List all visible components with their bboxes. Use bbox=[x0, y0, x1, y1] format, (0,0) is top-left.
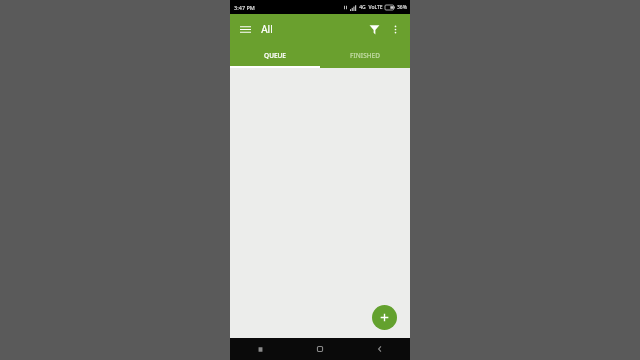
button[interactable]: Open navigation drawer bbox=[236, 20, 254, 38]
button[interactable]: Recent apps bbox=[230, 338, 290, 360]
button[interactable]: Add bbox=[372, 305, 397, 330]
button[interactable]: Filter bbox=[364, 19, 384, 39]
staticText: All bbox=[261, 22, 273, 36]
staticText: VoLTE bbox=[368, 4, 383, 11]
staticText: QUEUE bbox=[264, 51, 286, 60]
staticText: 3:47 PM bbox=[234, 4, 255, 11]
button[interactable]: Back bbox=[350, 338, 410, 360]
button[interactable]: Home bbox=[290, 338, 350, 360]
staticText: 36% bbox=[397, 4, 407, 11]
button[interactable]: FINISHED bbox=[320, 44, 410, 66]
staticText: 4G bbox=[359, 4, 366, 11]
staticText: FINISHED bbox=[350, 51, 380, 60]
button[interactable]: QUEUE bbox=[230, 44, 320, 66]
button[interactable]: More options bbox=[386, 20, 404, 38]
